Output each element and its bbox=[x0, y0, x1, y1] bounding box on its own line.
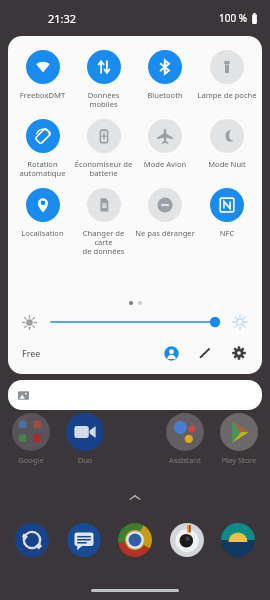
staticText: 100 % bbox=[219, 11, 248, 25]
staticText: Google bbox=[8, 455, 54, 465]
staticText: Changer de carte de données bbox=[73, 228, 134, 256]
button[interactable]: Économiseur de batterie bbox=[73, 119, 134, 178]
button[interactable]: Bluetooth bbox=[134, 50, 196, 100]
button[interactable]: Ne pas déranger bbox=[134, 188, 196, 238]
other: Auto brightness bbox=[232, 314, 248, 330]
button[interactable]: Rotation automatique bbox=[12, 119, 73, 178]
staticText: Localisation bbox=[12, 228, 73, 238]
button[interactable]: NFC bbox=[196, 188, 258, 238]
staticText: 21:32 bbox=[48, 11, 77, 26]
button[interactable]: Settings bbox=[228, 342, 250, 364]
button[interactable]: Phone bbox=[10, 518, 54, 562]
button[interactable]: Mode Nuit bbox=[196, 119, 258, 169]
button[interactable]: Edit tiles bbox=[194, 342, 216, 364]
button[interactable]: Google bbox=[8, 413, 54, 465]
button[interactable]: Changer de carte de données bbox=[73, 188, 134, 256]
staticText: FreeboxDMT bbox=[12, 90, 73, 100]
button[interactable] bbox=[8, 380, 262, 410]
button[interactable]: Mode Avion bbox=[134, 119, 196, 169]
staticText: Free bbox=[22, 347, 41, 359]
staticText: Bluetooth bbox=[134, 90, 196, 100]
button[interactable]: Play Store bbox=[216, 413, 262, 465]
staticText: Rotation automatique bbox=[12, 159, 73, 178]
staticText: Play Store bbox=[216, 455, 262, 465]
button[interactable]: Duo bbox=[62, 413, 108, 465]
staticText: Lampe de poche bbox=[196, 90, 258, 100]
button[interactable]: Camera bbox=[165, 518, 209, 562]
staticText: Assistant bbox=[162, 455, 208, 465]
button[interactable]: Localisation bbox=[12, 188, 73, 238]
button[interactable]: Low brightness bbox=[22, 314, 248, 330]
staticText: NFC bbox=[196, 228, 258, 238]
staticText: Ne pas déranger bbox=[134, 228, 196, 238]
button[interactable]: Assistant bbox=[162, 413, 208, 465]
staticText: Données mobiles bbox=[73, 90, 134, 109]
staticText: Économiseur de batterie bbox=[73, 159, 134, 178]
button[interactable]: FreeboxDMT bbox=[12, 50, 73, 100]
button[interactable]: Données mobiles bbox=[73, 50, 134, 109]
button[interactable]: Photos bbox=[216, 518, 260, 562]
staticText: Mode Avion bbox=[134, 159, 196, 169]
staticText: Mode Nuit bbox=[196, 159, 258, 169]
other: Low brightness bbox=[22, 315, 37, 330]
button[interactable]: Messages bbox=[62, 518, 106, 562]
button[interactable]: Lampe de poche bbox=[196, 50, 258, 100]
button[interactable]: Chrome bbox=[113, 518, 157, 562]
button[interactable]: Free bbox=[22, 347, 41, 359]
button[interactable]: User bbox=[160, 342, 182, 364]
staticText: Duo bbox=[62, 455, 108, 465]
